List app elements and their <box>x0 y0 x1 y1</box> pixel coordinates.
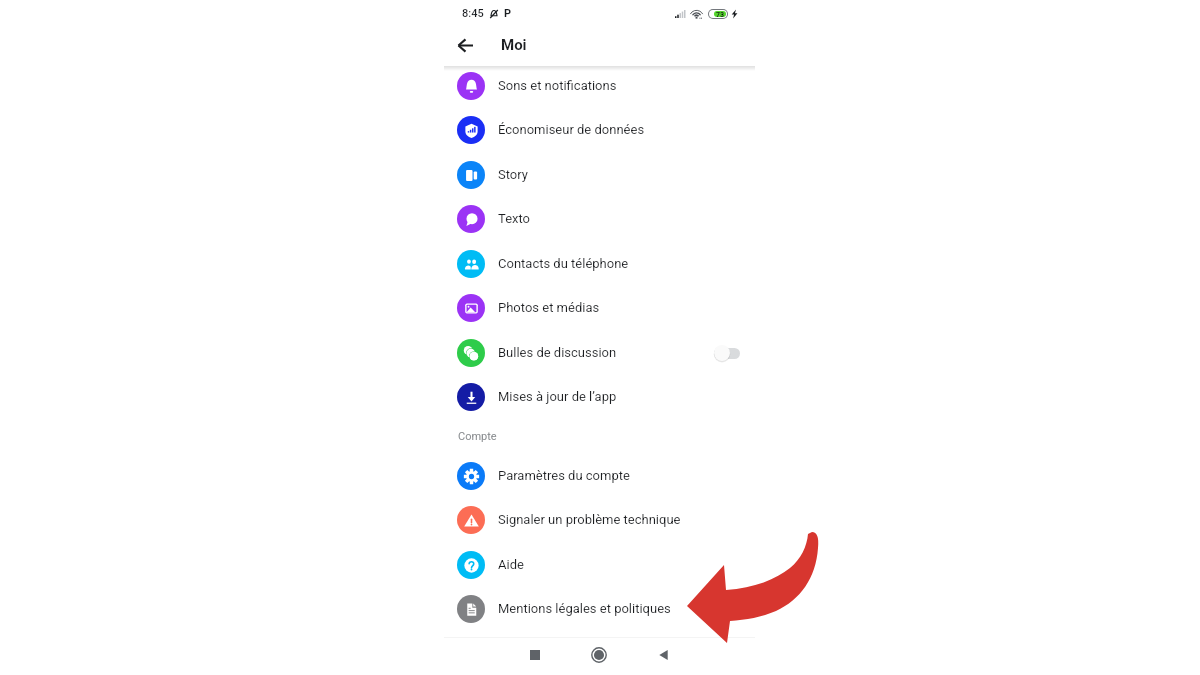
button[interactable]: Recent apps <box>518 638 552 672</box>
button[interactable]: Mises à jour de l’app <box>444 374 755 419</box>
staticText: Story <box>498 167 528 182</box>
button[interactable]: Texto <box>444 196 755 241</box>
button[interactable]: Économiseur de données <box>444 107 755 152</box>
staticText: Paramètres du compte <box>498 468 630 483</box>
staticText: Mentions légales et politiques <box>498 601 671 616</box>
staticText: Aide <box>498 557 524 572</box>
staticText: Texto <box>498 211 531 226</box>
staticText: 8:45 <box>462 7 484 20</box>
staticText: Moi <box>501 36 527 54</box>
staticText: Contacts du téléphone <box>498 256 629 271</box>
staticText: Sons et notifications <box>498 78 617 93</box>
staticText: Bulles de discussion <box>498 345 617 360</box>
staticText: Mises à jour de l’app <box>498 389 617 404</box>
button[interactable]: Signaler un problème technique <box>444 497 755 542</box>
button[interactable]: Mentions légales et politiques <box>444 586 755 631</box>
button[interactable]: Aide <box>444 542 755 587</box>
button[interactable]: Back <box>450 30 480 60</box>
button[interactable]: Bulles de discussion <box>444 330 755 375</box>
button[interactable]: Toggle chat bubbles <box>713 344 740 362</box>
button[interactable]: Back <box>646 638 680 672</box>
button[interactable]: Photos et médias <box>444 285 755 330</box>
button[interactable]: Home <box>582 638 616 672</box>
staticText: Compte <box>458 430 497 443</box>
staticText: Photos et médias <box>498 300 600 315</box>
button[interactable]: Contacts du téléphone <box>444 241 755 286</box>
button[interactable]: Paramètres du compte <box>444 453 755 498</box>
staticText: Économiseur de données <box>498 122 645 137</box>
staticText: 73 <box>716 11 725 17</box>
staticText: P <box>504 7 512 20</box>
staticText: Signaler un problème technique <box>498 512 681 527</box>
button[interactable]: Sons et notifications <box>444 63 755 108</box>
button[interactable]: Story <box>444 152 755 197</box>
